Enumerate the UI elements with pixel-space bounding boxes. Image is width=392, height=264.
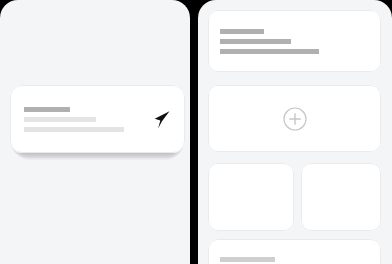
button[interactable]: Add (208, 85, 381, 152)
button[interactable]: Pointer (10, 85, 185, 153)
button[interactable] (208, 163, 294, 231)
button[interactable] (208, 239, 381, 264)
button[interactable] (301, 163, 381, 231)
other: Pointer (153, 110, 170, 129)
button[interactable] (208, 10, 381, 72)
